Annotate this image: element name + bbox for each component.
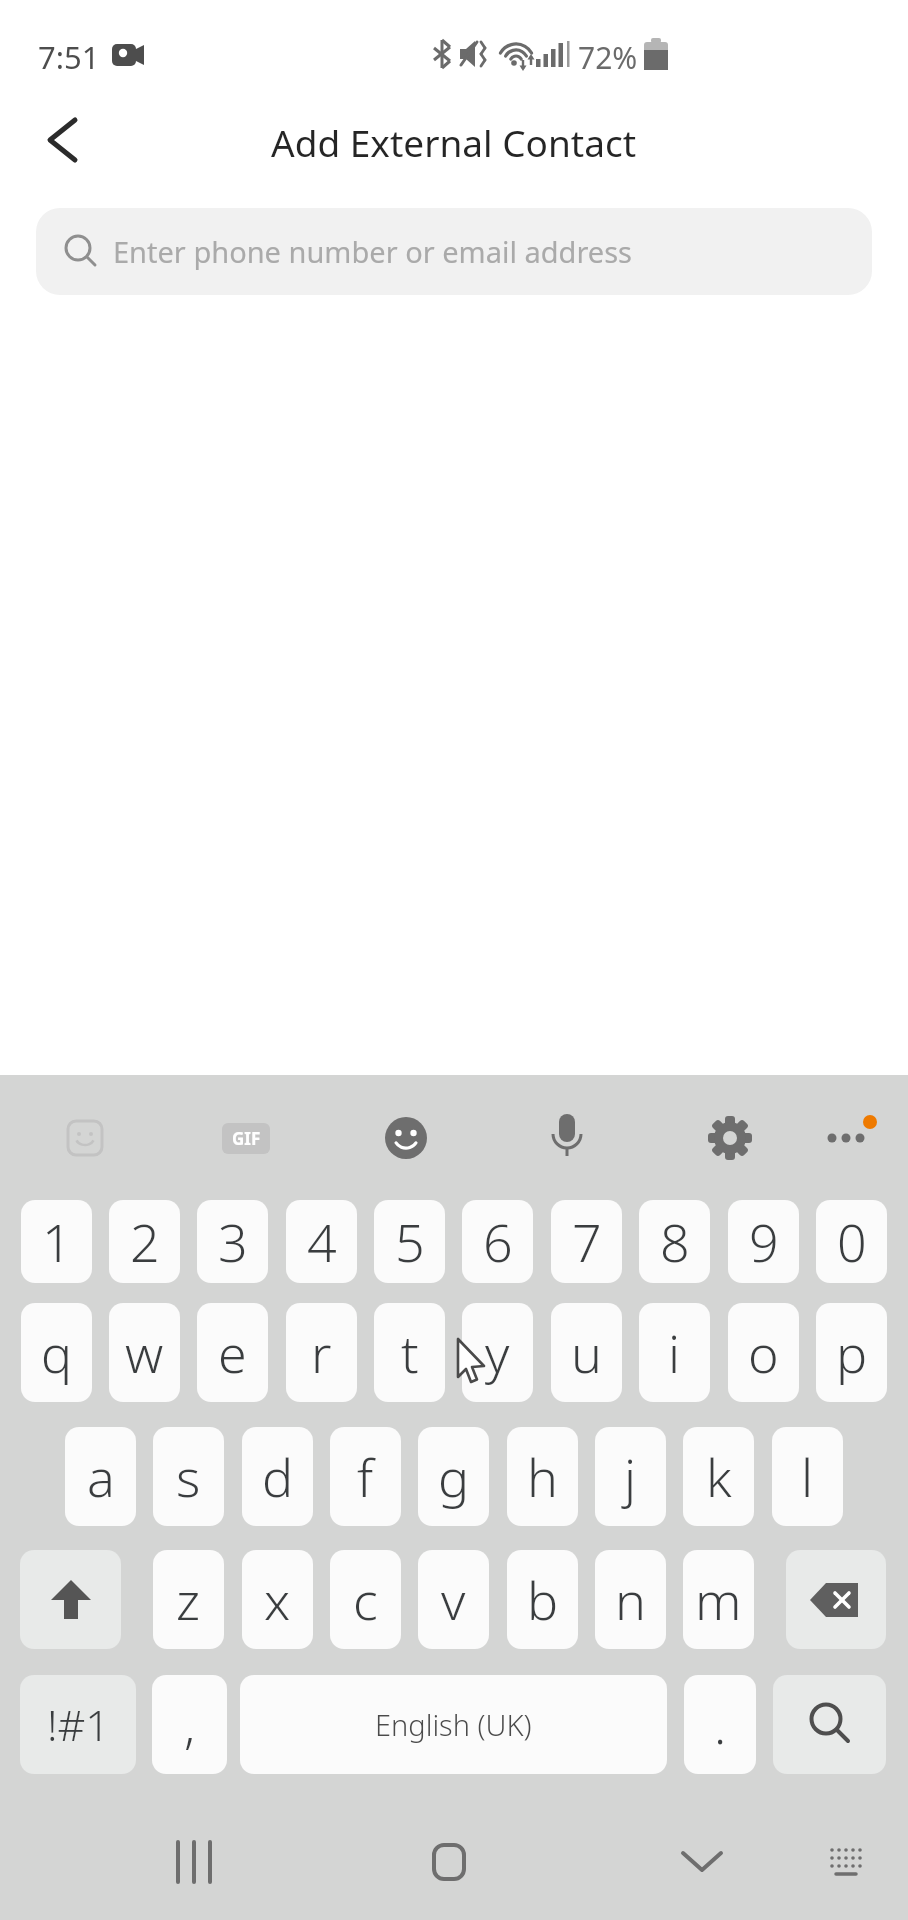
staticText: 7:51 <box>38 36 100 78</box>
button[interactable]: f <box>330 1427 401 1526</box>
staticText: q <box>41 1317 73 1388</box>
button[interactable]: o <box>728 1303 799 1402</box>
button[interactable] <box>808 1824 884 1900</box>
button[interactable]: h <box>507 1427 578 1526</box>
button[interactable]: l <box>772 1427 843 1526</box>
button[interactable]: m <box>683 1550 754 1649</box>
button[interactable]: g <box>418 1427 489 1526</box>
staticText: English (UK) <box>375 1705 532 1744</box>
button[interactable] <box>411 1824 487 1900</box>
staticText: u <box>571 1317 602 1388</box>
button[interactable]: i <box>639 1303 710 1402</box>
staticText: r <box>311 1317 332 1388</box>
staticText: o <box>748 1317 779 1388</box>
button[interactable]: x <box>242 1550 313 1649</box>
staticText: 4 <box>307 1206 337 1277</box>
staticText: w <box>125 1317 164 1388</box>
button[interactable]: 0 <box>816 1200 887 1283</box>
staticText: Add External Contact <box>271 117 637 167</box>
staticText: d <box>262 1441 294 1512</box>
staticText: 0 <box>837 1206 867 1277</box>
staticText: 3 <box>218 1206 248 1277</box>
staticText: 72% <box>578 37 638 78</box>
button[interactable]: 7 <box>551 1200 622 1283</box>
button[interactable] <box>156 1824 232 1900</box>
button[interactable]: r <box>286 1303 357 1402</box>
button[interactable]: n <box>595 1550 666 1649</box>
button[interactable]: b <box>507 1550 578 1649</box>
staticText: i <box>668 1317 681 1388</box>
button[interactable] <box>664 1824 740 1900</box>
button[interactable]: a <box>65 1427 136 1526</box>
staticText: y <box>485 1317 510 1388</box>
staticText: . <box>714 1691 727 1759</box>
button[interactable]: !#1 <box>20 1675 136 1774</box>
staticText: e <box>218 1317 247 1388</box>
staticText: n <box>615 1564 646 1635</box>
button[interactable]: Enter phone number or email address <box>36 208 872 295</box>
button[interactable]: s <box>153 1427 224 1526</box>
staticText: 8 <box>660 1206 690 1277</box>
button[interactable]: 2 <box>109 1200 180 1283</box>
staticText: x <box>264 1564 291 1635</box>
button[interactable]: j <box>595 1427 666 1526</box>
button[interactable] <box>28 104 96 176</box>
button[interactable]: 5 <box>374 1200 445 1283</box>
staticText: 2 <box>130 1206 160 1277</box>
button[interactable]: y <box>462 1303 533 1402</box>
button[interactable]: w <box>109 1303 180 1402</box>
staticText: t <box>401 1317 419 1388</box>
button[interactable]: . <box>684 1675 756 1774</box>
button[interactable] <box>773 1675 886 1774</box>
button[interactable] <box>786 1550 886 1649</box>
staticText: Enter phone number or email address <box>113 232 632 271</box>
button[interactable]: 8 <box>639 1200 710 1283</box>
staticText: !#1 <box>47 1695 110 1754</box>
staticText: v <box>441 1564 466 1635</box>
staticText: s <box>176 1441 201 1512</box>
button[interactable]: t <box>374 1303 445 1402</box>
button[interactable]: z <box>153 1550 224 1649</box>
staticText: 7 <box>572 1206 602 1277</box>
staticText: a <box>87 1441 115 1512</box>
staticText: c <box>353 1564 378 1635</box>
staticText: b <box>527 1564 559 1635</box>
staticText: f <box>357 1441 374 1512</box>
staticText: g <box>438 1441 470 1512</box>
staticText: , <box>184 1691 196 1759</box>
staticText: k <box>706 1441 732 1512</box>
staticText: j <box>624 1441 637 1512</box>
button[interactable]: u <box>551 1303 622 1402</box>
button[interactable]: English (UK) <box>240 1675 667 1774</box>
button[interactable]: 1 <box>21 1200 92 1283</box>
button[interactable]: , <box>152 1675 227 1774</box>
staticText: 5 <box>395 1206 425 1277</box>
button[interactable]: 9 <box>728 1200 799 1283</box>
staticText: 9 <box>749 1206 779 1277</box>
button[interactable]: 4 <box>286 1200 357 1283</box>
button[interactable]: k <box>683 1427 754 1526</box>
staticText: h <box>527 1441 558 1512</box>
button[interactable]: e <box>197 1303 268 1402</box>
button[interactable] <box>20 1550 121 1649</box>
button[interactable]: v <box>418 1550 489 1649</box>
staticText: 6 <box>483 1206 513 1277</box>
button[interactable]: 3 <box>197 1200 268 1283</box>
button[interactable]: c <box>330 1550 401 1649</box>
button[interactable]: q <box>21 1303 92 1402</box>
staticText: 1 <box>42 1206 72 1277</box>
button[interactable]: p <box>816 1303 887 1402</box>
button[interactable]: 6 <box>462 1200 533 1283</box>
staticText: l <box>801 1441 814 1512</box>
button[interactable]: d <box>242 1427 313 1526</box>
staticText: p <box>836 1317 868 1388</box>
staticText: GIF <box>232 1127 261 1150</box>
staticText: m <box>695 1564 742 1635</box>
staticText: z <box>176 1564 201 1635</box>
